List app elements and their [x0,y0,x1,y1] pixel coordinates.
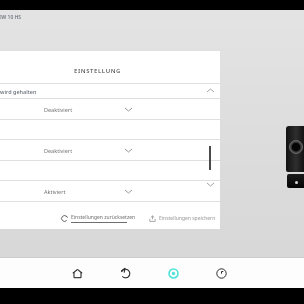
button[interactable]: Scroll down [204,178,216,190]
button[interactable]: Info [0,99,220,119]
button[interactable]: Einstellungen speichern [148,211,216,225]
staticText: Aktiviert [44,188,66,195]
button[interactable]: Settings [160,260,186,286]
staticText: Tür wird gehalten [0,88,37,95]
button[interactable]: Deaktiviert [40,101,142,117]
button[interactable]: Help [208,260,234,286]
staticText: Einstellungen speichern [159,215,216,222]
staticText: Deaktiviert [44,147,73,154]
button[interactable]: Info [0,140,220,160]
button[interactable]: Info [0,181,220,201]
button[interactable]: Refresh [112,260,138,286]
staticText: DW 10 HS [0,14,22,21]
button[interactable]: Aktiviert [40,183,142,199]
staticText: EINSTELLUNG [74,67,122,75]
button[interactable]: Scroll up [204,84,216,96]
button[interactable]: Deaktiviert [40,142,142,158]
staticText: Deaktiviert [44,106,73,113]
staticText: Einstellungen zurücksetzen [71,214,136,221]
button[interactable]: Einstellungen zurücksetzen [60,211,136,225]
button[interactable]: Home [64,260,90,286]
